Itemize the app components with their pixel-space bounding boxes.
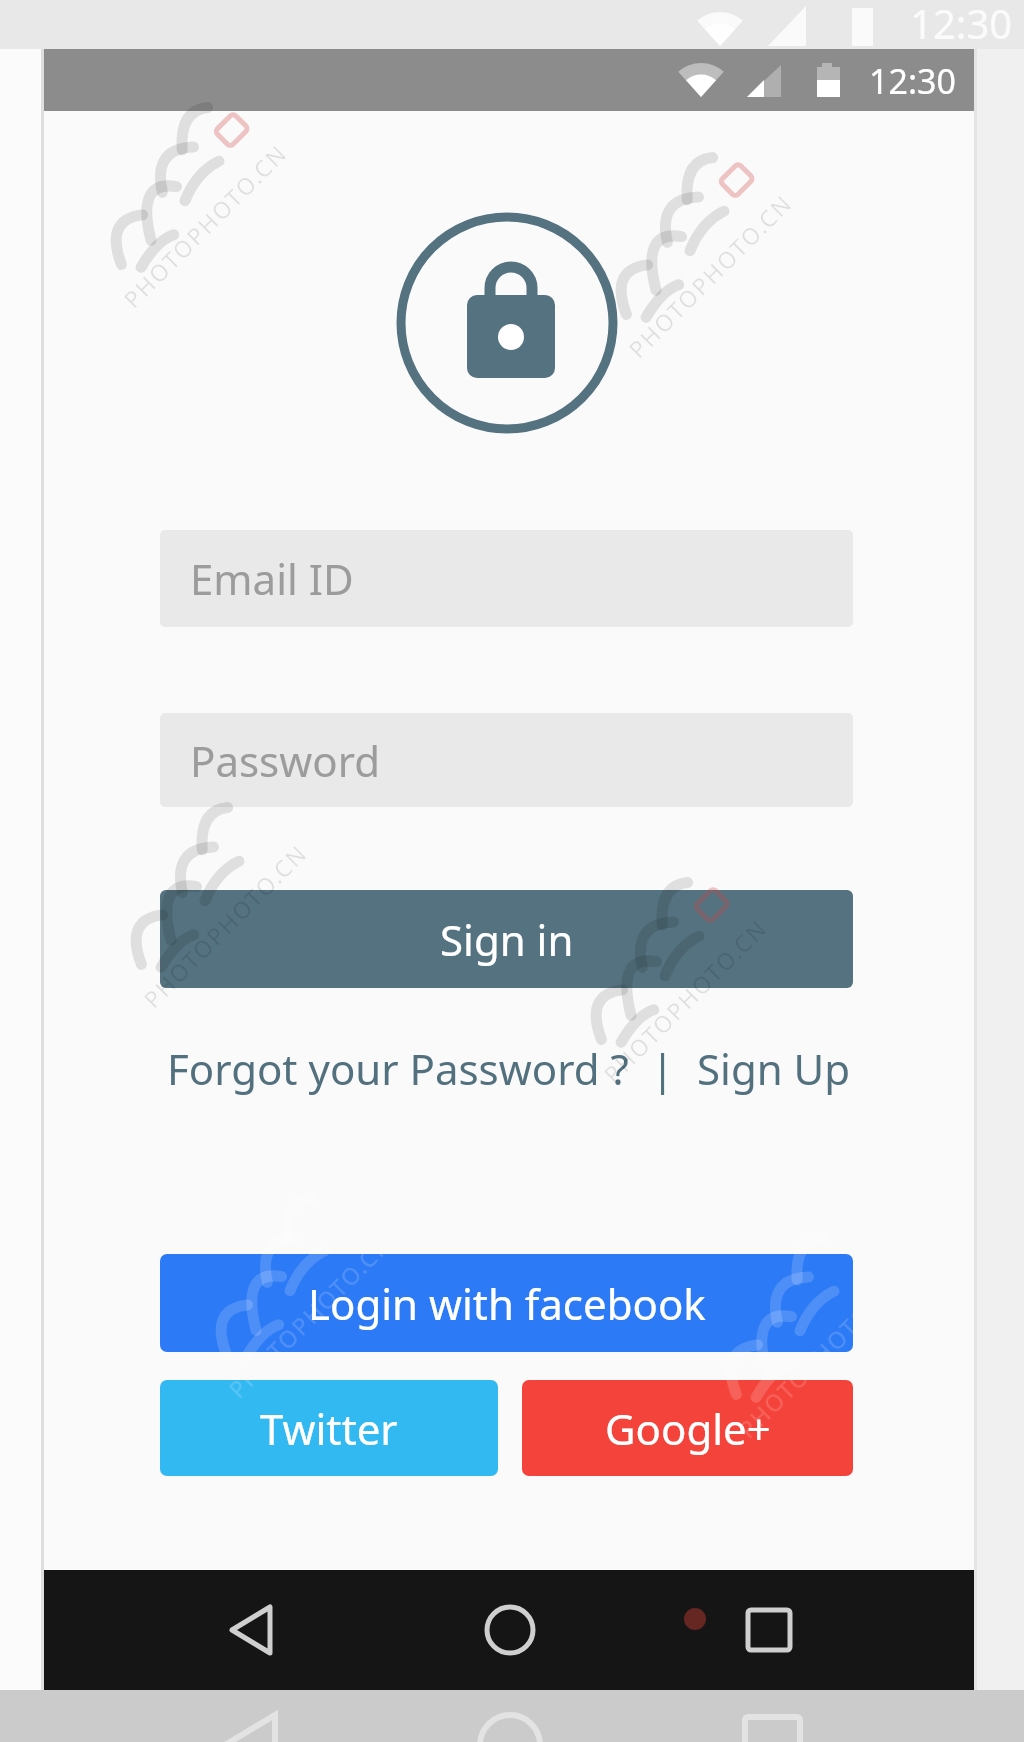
staticText: PHOTOPHOTO.CN: [116, 136, 294, 314]
button[interactable]: Password: [160, 713, 853, 807]
button[interactable]: Twitter: [160, 1380, 498, 1476]
staticText: Password: [190, 732, 380, 789]
staticText: 12:30: [869, 58, 956, 104]
button[interactable]: [210, 1588, 294, 1672]
button[interactable]: Sign in: [160, 890, 853, 988]
button[interactable]: Login with facebook: [160, 1254, 853, 1352]
button[interactable]: Forgot your Password ?: [167, 1040, 629, 1097]
button[interactable]: Google+: [522, 1380, 853, 1476]
staticText: PHOTOPHOTO.CN: [136, 836, 314, 1014]
staticText: Login with facebook: [308, 1275, 706, 1332]
staticText: PHOTOPHOTO.CN: [731, 1266, 909, 1444]
staticText: PHOTOPHOTO.CN: [621, 186, 799, 364]
staticText: |: [651, 1040, 675, 1097]
staticText: Google+: [605, 1400, 771, 1457]
staticText: Twitter: [260, 1400, 398, 1457]
button[interactable]: Sign Up: [697, 1040, 851, 1097]
button[interactable]: [468, 1588, 552, 1672]
staticText: PHOTOPHOTO.CN: [221, 1226, 399, 1404]
staticText: Sign in: [440, 911, 574, 968]
staticText: 12:30: [910, 0, 1013, 50]
button[interactable]: Email ID: [160, 530, 853, 627]
staticText: Email ID: [190, 550, 354, 607]
staticText: PHOTOPHOTO.CN: [596, 911, 774, 1089]
button[interactable]: [727, 1588, 811, 1672]
